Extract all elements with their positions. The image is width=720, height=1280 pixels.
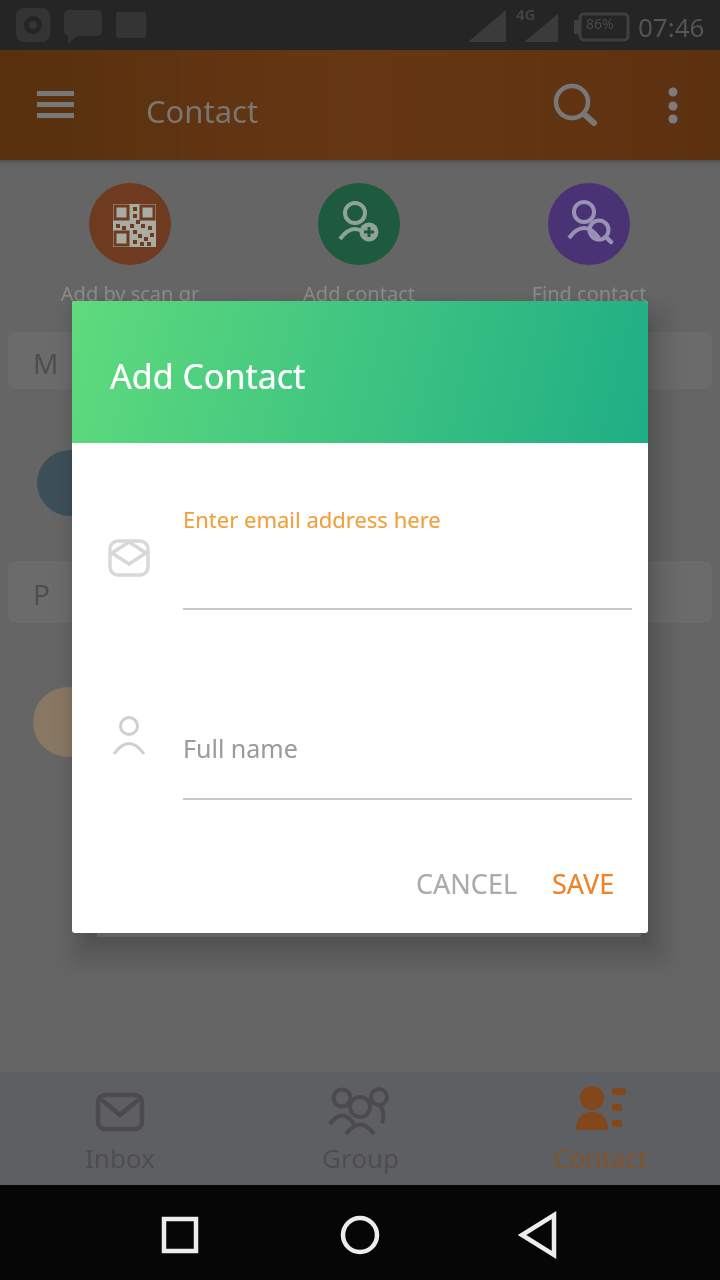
staticText: Contact (553, 1140, 648, 1175)
button[interactable] (24, 78, 86, 130)
button[interactable] (89, 183, 171, 265)
button[interactable]: Inbox (0, 1072, 240, 1185)
staticText: M (33, 344, 59, 382)
button[interactable] (648, 75, 698, 131)
button[interactable] (505, 1202, 575, 1268)
button[interactable] (545, 75, 601, 131)
staticText: SAVE (552, 865, 615, 902)
button[interactable] (548, 183, 630, 265)
staticText: Find contact (459, 280, 719, 307)
staticText: Enter email address here (183, 504, 441, 534)
button[interactable] (325, 1202, 395, 1268)
button[interactable] (318, 183, 400, 265)
button[interactable]: Contact (480, 1072, 720, 1185)
staticText: Inbox (85, 1140, 155, 1175)
staticText: Add contact (229, 280, 489, 307)
button[interactable]: SAVE (533, 853, 633, 913)
button[interactable]: Group (240, 1072, 480, 1185)
staticText: Full name (183, 731, 298, 765)
button[interactable]: CANCEL (402, 853, 532, 913)
button[interactable] (145, 1202, 215, 1268)
staticText: Contact (146, 90, 259, 132)
staticText: 4G (516, 4, 536, 24)
staticText: 07:46 (638, 9, 705, 44)
staticText: Add Contact (110, 353, 306, 399)
staticText: Group (322, 1140, 399, 1175)
staticText: 86% (586, 14, 614, 33)
staticText: P (33, 575, 50, 613)
staticText: Add by scan qr (0, 280, 260, 307)
staticText: CANCEL (416, 865, 518, 902)
